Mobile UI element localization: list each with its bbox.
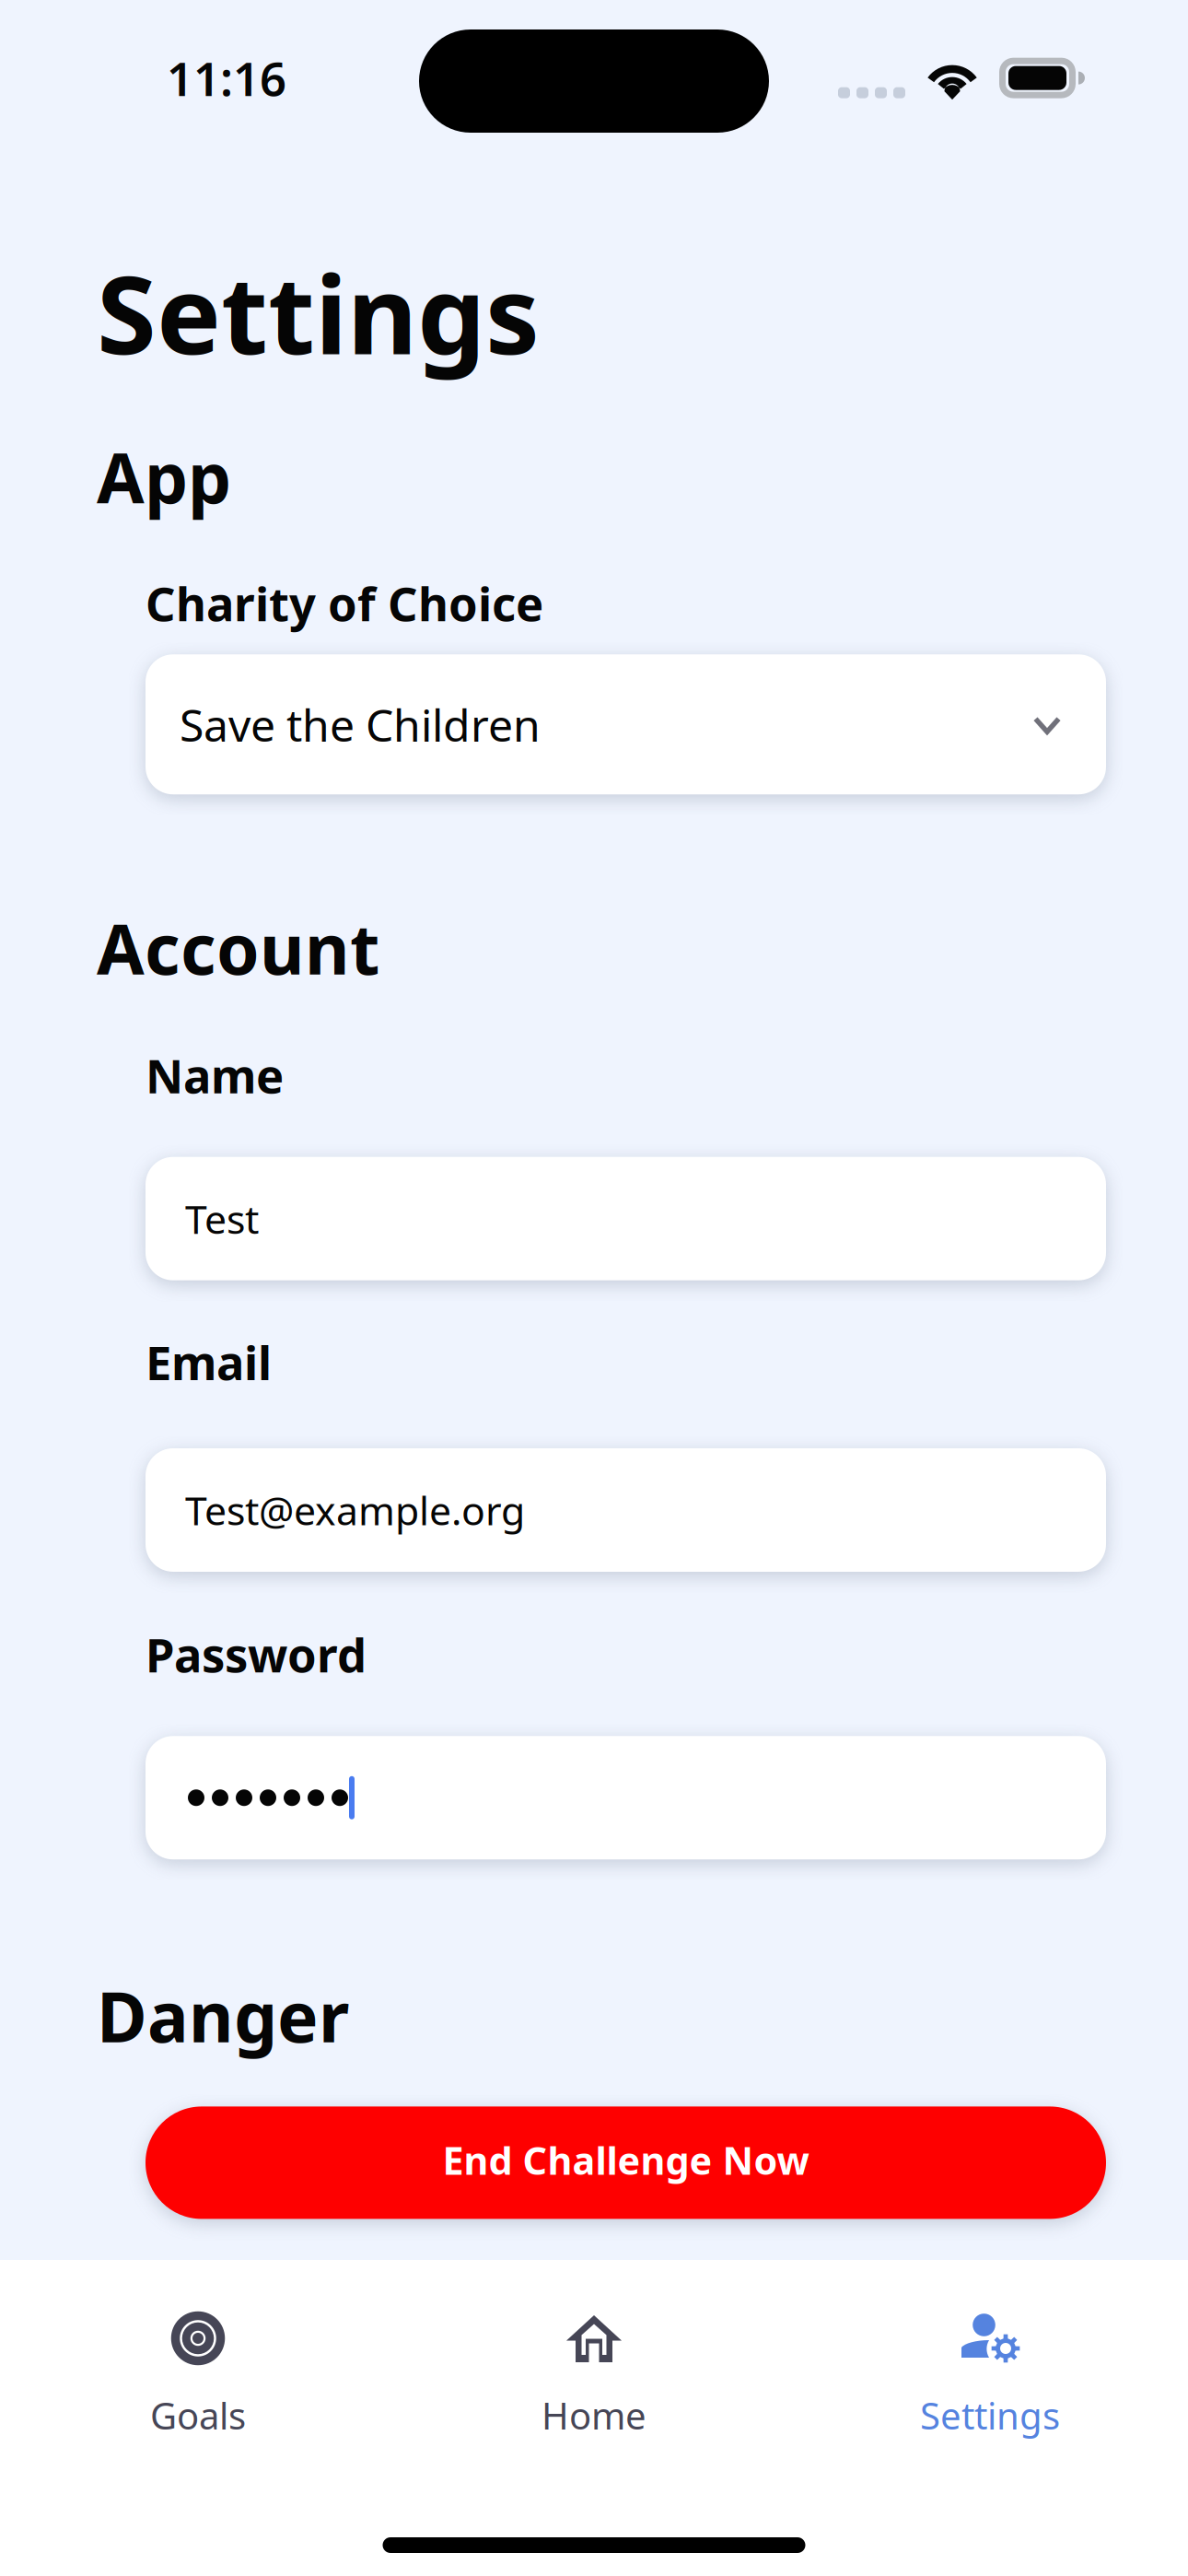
staticText: Home: [542, 2391, 646, 2440]
staticText: Settings: [920, 2391, 1060, 2440]
staticText: Account: [97, 902, 379, 994]
button[interactable]: Test@example.org: [0, 1448, 1188, 1572]
staticText: Name: [146, 1044, 284, 1106]
staticText: App: [97, 431, 231, 522]
staticText: Test@example.org: [185, 1484, 525, 1536]
staticText: Email: [146, 1331, 272, 1393]
staticText: Password: [146, 1623, 367, 1685]
staticText: End Challenge Now: [443, 2135, 809, 2185]
staticText: Charity of Choice: [146, 572, 543, 634]
staticText: Save the Children: [180, 695, 541, 754]
staticText: Danger: [97, 1970, 349, 2061]
button[interactable]: Save the Children: [0, 654, 1188, 794]
button[interactable]: [0, 1736, 1188, 1859]
staticText: 11:16: [167, 47, 286, 109]
button[interactable]: Settings: [792, 2260, 1188, 2462]
button[interactable]: Test: [0, 1157, 1188, 1280]
staticText: Settings: [97, 240, 540, 384]
staticText: Goals: [150, 2391, 246, 2440]
staticText: Test: [185, 1193, 259, 1245]
button[interactable]: Home: [396, 2260, 792, 2462]
button[interactable]: End Challenge Now: [0, 2106, 1188, 2219]
button[interactable]: Goals: [0, 2260, 396, 2462]
